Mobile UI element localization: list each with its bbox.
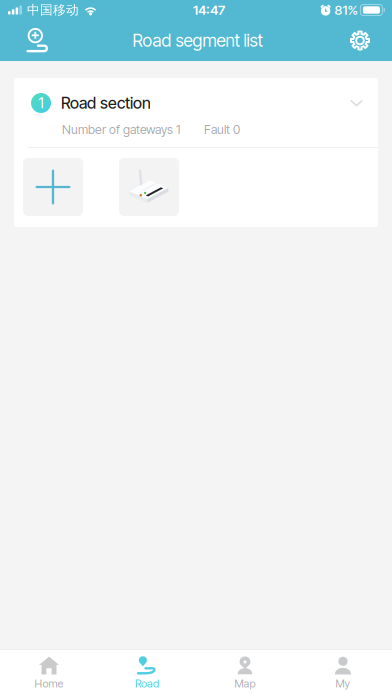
button[interactable]: Add road section [12,20,58,61]
button[interactable]: Map [196,650,294,696]
staticText: Map [234,677,255,690]
staticText: Fault 0 [204,122,240,137]
button[interactable]: 1 [14,78,378,147]
button[interactable]: My [294,650,392,696]
staticText: 81% [334,2,357,18]
button[interactable]: Home [0,650,98,696]
staticText: Road section [61,93,151,113]
staticText: 1 [38,94,43,112]
button[interactable]: Gateway 1 [119,158,179,216]
staticText: 中国移动 [27,2,79,18]
staticText: Road [135,677,159,690]
button[interactable]: Settings [337,20,383,61]
staticText: Home [34,677,63,690]
staticText: Number of gateways 1 [62,122,180,137]
staticText: Road segment list [132,30,262,51]
staticText: My [335,677,350,690]
staticText: 14:47 [193,2,225,18]
button[interactable]: Road [98,650,196,696]
button[interactable]: Add gateway [23,158,83,216]
